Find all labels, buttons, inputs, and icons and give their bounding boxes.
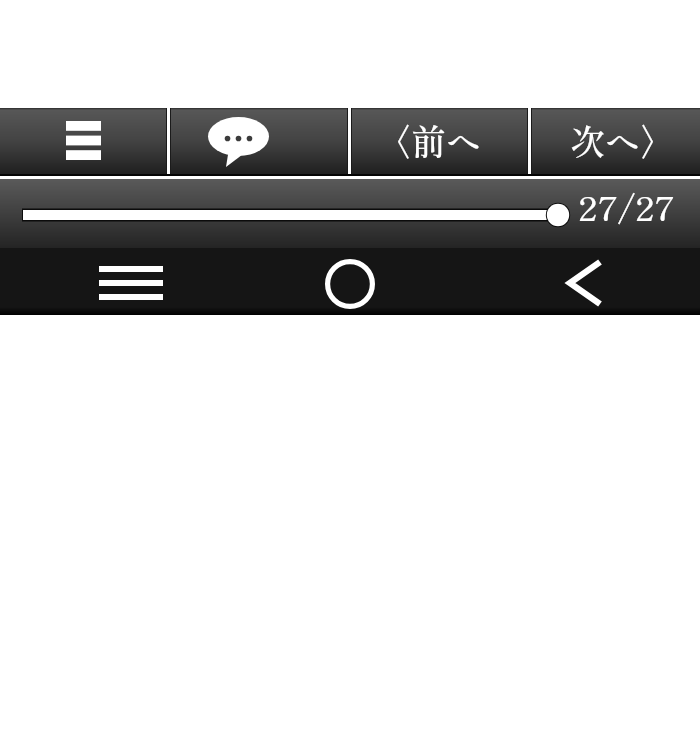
button[interactable]: 次へ〉 bbox=[532, 108, 700, 174]
button[interactable]: Menu bbox=[0, 108, 166, 174]
staticText: 次へ〉 bbox=[570, 114, 676, 165]
staticText: 〈前へ bbox=[376, 114, 482, 165]
button[interactable]: Comments bbox=[171, 108, 347, 174]
button[interactable]: Home bbox=[302, 248, 398, 315]
button[interactable]: Menu bbox=[83, 248, 179, 315]
button[interactable]: Back bbox=[535, 248, 631, 315]
staticText: 27/27 bbox=[578, 183, 676, 231]
button[interactable]: 〈前へ bbox=[352, 108, 527, 174]
